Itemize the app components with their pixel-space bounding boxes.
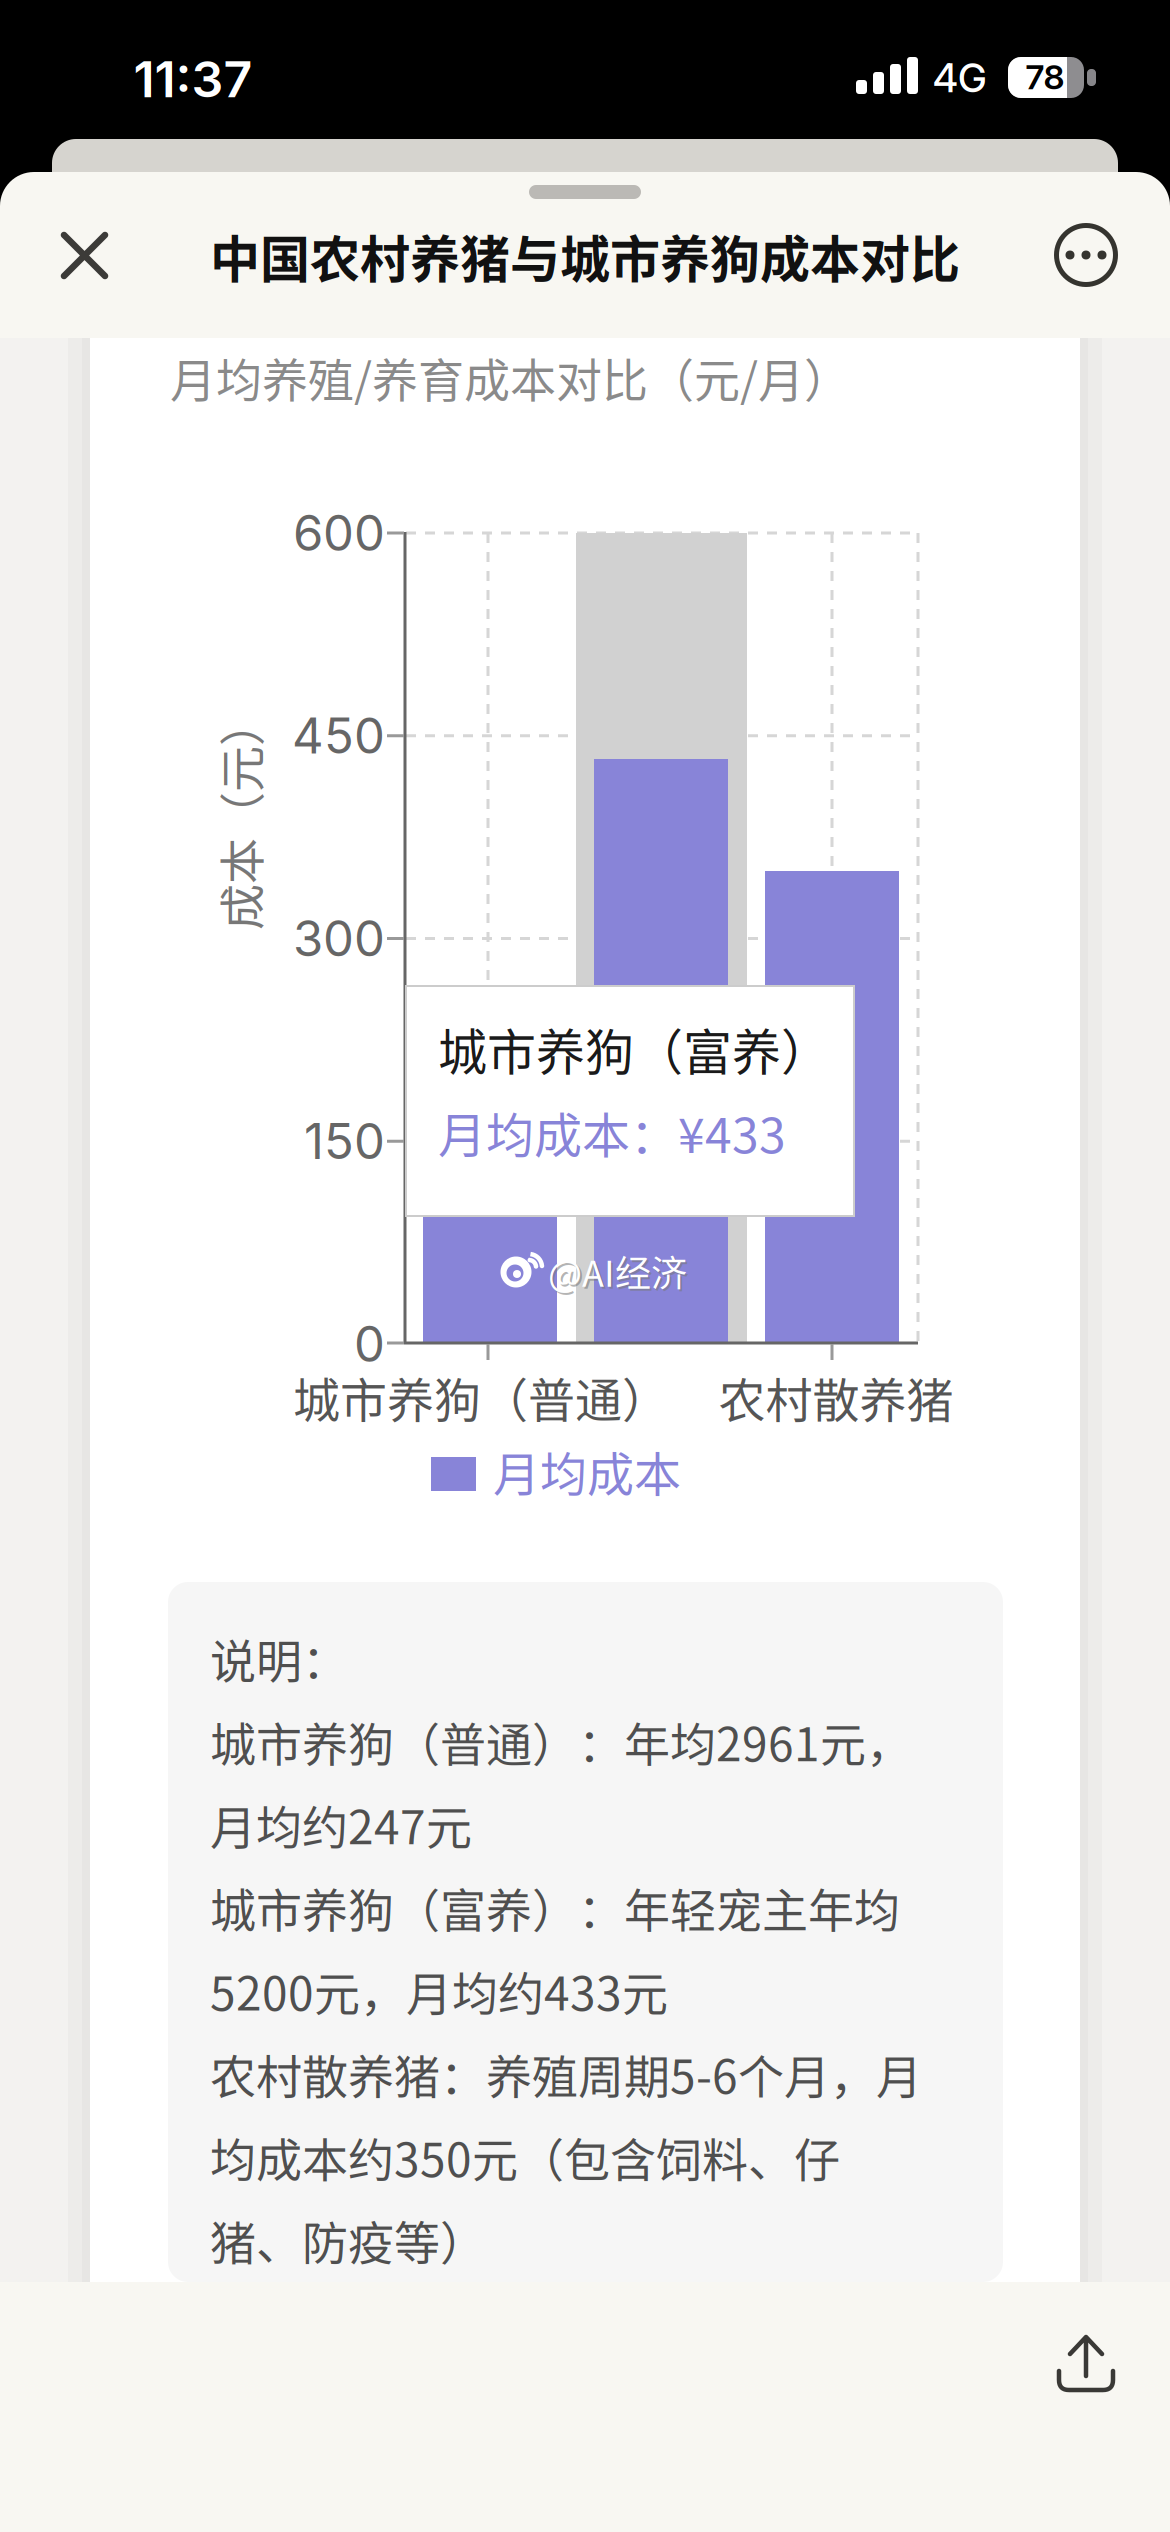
staticText: 城市养狗（普通）：年均2961元， bbox=[210, 1708, 912, 1774]
staticText: 78 bbox=[1025, 56, 1064, 97]
staticText: 600 bbox=[293, 503, 385, 563]
staticText: 11:37 bbox=[133, 49, 252, 109]
staticText: @AI经济 bbox=[550, 1247, 689, 1299]
staticText: 中国农村养猪与城市养狗成本对比 bbox=[210, 220, 960, 292]
staticText: 月均成本：¥433 bbox=[438, 1097, 786, 1167]
staticText: 月均约247元 bbox=[210, 1791, 472, 1857]
staticText: 农村散养猪 bbox=[718, 1363, 953, 1431]
staticText: 城市养狗（富养）：年轻宠主年均 bbox=[210, 1874, 900, 1941]
staticText: 月均养殖/养育成本对比（元/月） bbox=[170, 344, 850, 410]
staticText: 150 bbox=[304, 1112, 385, 1171]
button[interactable]: Close bbox=[62, 233, 107, 278]
staticText: 0 bbox=[354, 1314, 385, 1374]
staticText: 300 bbox=[293, 909, 385, 968]
staticText: 月均成本 bbox=[493, 1437, 681, 1505]
staticText: 成本（元） bbox=[124, 782, 354, 848]
staticText: 450 bbox=[292, 706, 385, 765]
staticText: 说明： bbox=[210, 1625, 348, 1691]
staticText: 城市养狗（普通） bbox=[293, 1363, 669, 1431]
staticText: 农村散养猪：养殖周期5-6个月，月 bbox=[210, 2040, 922, 2107]
button[interactable]: Share bbox=[1056, 2335, 1116, 2393]
staticText: 均成本约350元（包含饲料、仔 bbox=[210, 2123, 840, 2190]
staticText: 城市养狗（富养） bbox=[438, 1013, 830, 1084]
staticText: 5200元，月均约433元 bbox=[210, 1957, 668, 2024]
button[interactable]: More bbox=[1054, 223, 1118, 287]
staticText: @AI经济 bbox=[548, 1245, 687, 1297]
staticText: 猪、防疫等） bbox=[210, 2206, 486, 2273]
staticText: 4G bbox=[933, 54, 987, 102]
